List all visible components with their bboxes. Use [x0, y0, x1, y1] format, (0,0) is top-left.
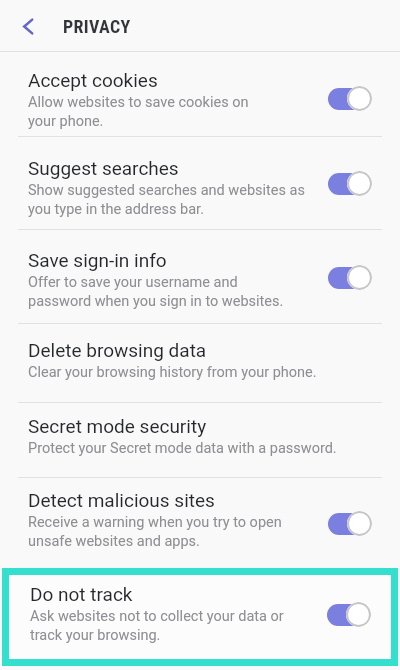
staticText: Offer to save your username and password…	[28, 274, 284, 309]
staticText: Delete browsing data	[28, 339, 207, 361]
button[interactable]: Save sign-in info	[0, 230, 400, 324]
button[interactable]: Do not track	[2, 568, 398, 666]
staticText: Allow websites to save cookies on your p…	[28, 94, 249, 129]
staticText: Accept cookies	[28, 69, 158, 91]
staticText: Clear your browsing history from your ph…	[28, 364, 317, 381]
staticText: Show suggested searches and websites as …	[28, 182, 305, 217]
staticText: Detect malicious sites	[28, 489, 215, 511]
staticText: Secret mode security	[28, 415, 207, 437]
staticText: Protect your Secret mode data with a pas…	[28, 440, 337, 457]
staticText: Do not track	[30, 583, 133, 605]
staticText: Save sign-in info	[28, 249, 167, 271]
button[interactable]: Accept cookies	[0, 52, 400, 137]
button[interactable]: Detect malicious sites	[0, 478, 400, 568]
staticText: PRIVACY	[63, 16, 131, 37]
staticText: Suggest searches	[28, 157, 179, 179]
button[interactable]	[12, 10, 44, 42]
staticText: Receive a warning when you try to open u…	[28, 514, 282, 549]
button[interactable]: Suggest searches	[0, 137, 400, 230]
button[interactable]: Delete browsing data	[0, 324, 400, 403]
staticText: Ask websites not to collect your data or…	[30, 608, 284, 643]
button[interactable]: Secret mode security	[0, 403, 400, 478]
